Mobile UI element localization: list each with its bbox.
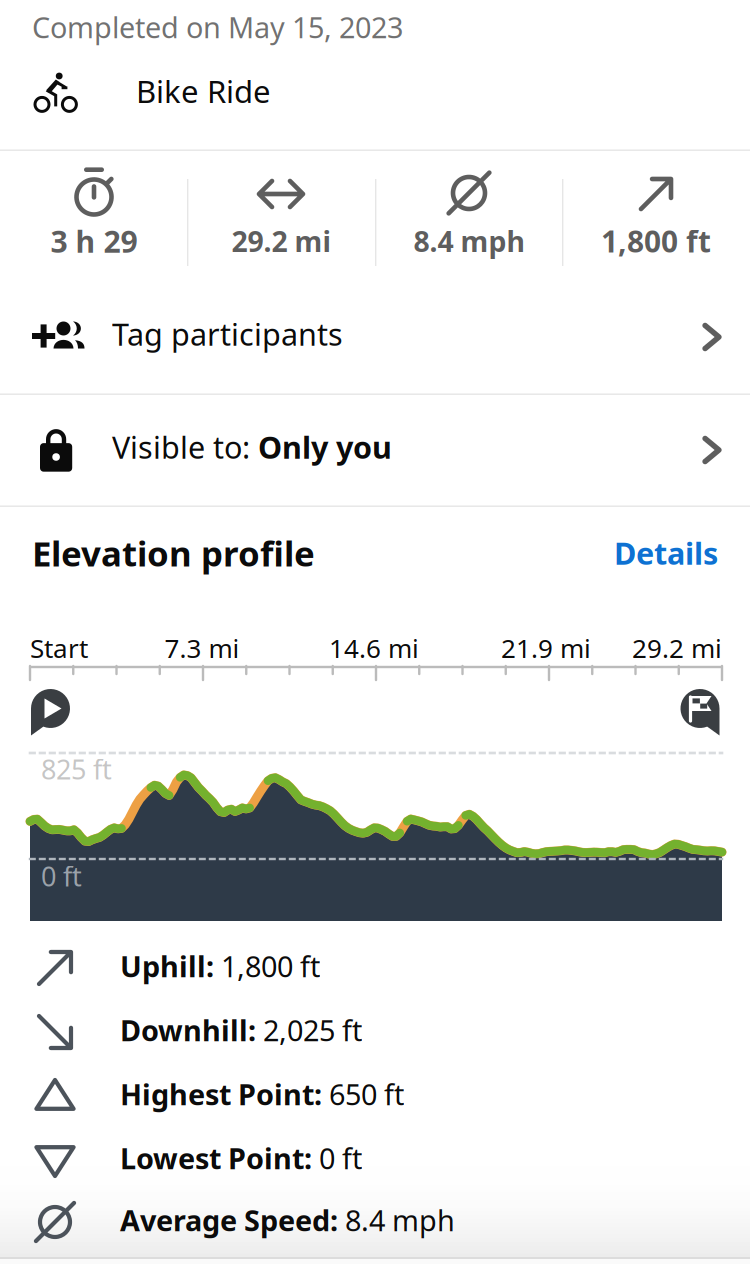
staticText: Completed on May 15, 2023 xyxy=(32,7,403,47)
staticText: 0 ft xyxy=(312,1138,362,1178)
staticText: 2,025 ft xyxy=(256,1010,362,1050)
button[interactable]: Details xyxy=(0,532,750,574)
button[interactable]: Visible to: xyxy=(0,392,750,502)
staticText: 8.4 mph xyxy=(413,222,524,260)
staticText: 1,800 ft xyxy=(214,946,320,986)
staticText: Visible to: xyxy=(112,426,250,468)
staticText: 7.3 mi xyxy=(164,630,239,666)
staticText: 825 ft xyxy=(41,751,112,787)
staticText: 0 ft xyxy=(41,858,82,894)
staticText: Highest Point: xyxy=(120,1074,322,1114)
staticText: 3 h 29 xyxy=(50,220,137,261)
staticText: Elevation profile xyxy=(32,529,315,577)
staticText: Lowest Point: xyxy=(120,1138,312,1178)
staticText: Bike Ride xyxy=(136,70,271,112)
staticText: Uphill: xyxy=(120,946,214,986)
staticText: 650 ft xyxy=(322,1074,404,1114)
button[interactable]: Tag participants xyxy=(0,285,750,383)
staticText: 8.4 mph xyxy=(338,1200,455,1240)
staticText: Tag participants xyxy=(112,313,343,355)
staticText: Details xyxy=(614,532,718,574)
staticText: Downhill: xyxy=(120,1010,256,1050)
staticText: 21.9 mi xyxy=(501,630,591,666)
staticText: Start xyxy=(30,630,88,666)
staticText: Only you xyxy=(250,426,392,468)
staticText: 29.2 mi xyxy=(231,222,330,260)
staticText: 1,800 ft xyxy=(601,221,711,261)
staticText: 29.2 mi xyxy=(632,630,722,666)
staticText: Average Speed: xyxy=(120,1200,338,1240)
staticText: 14.6 mi xyxy=(329,630,419,666)
